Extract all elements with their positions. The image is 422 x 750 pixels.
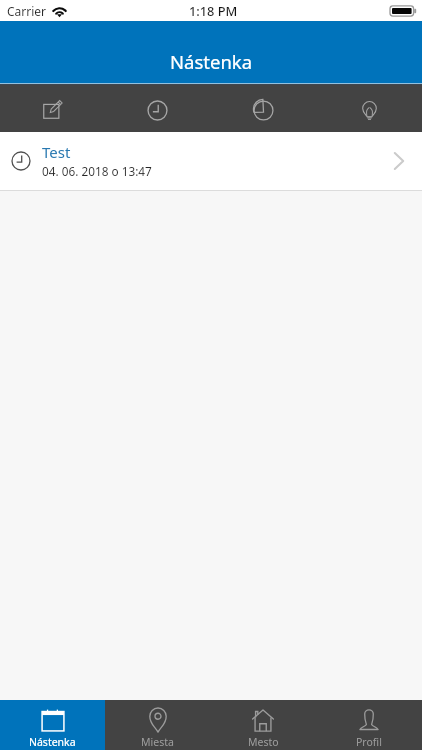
- staticText: Carrier: [7, 3, 47, 19]
- staticText: Nástenka: [170, 49, 253, 74]
- button[interactable]: Statistics: [210, 85, 316, 132]
- staticText: Miesta: [141, 735, 174, 749]
- button[interactable]: Test: [0, 132, 422, 190]
- button[interactable]: Recent: [105, 85, 210, 132]
- staticText: Nástenka: [29, 735, 76, 749]
- staticText: Test: [42, 142, 71, 162]
- button[interactable]: Miesta: [105, 700, 210, 750]
- staticText: Profil: [356, 735, 382, 749]
- button[interactable]: Ideas: [316, 85, 422, 132]
- button[interactable]: Compose: [0, 85, 105, 132]
- button[interactable]: Mesto: [210, 700, 316, 750]
- button[interactable]: Profil: [316, 700, 422, 750]
- staticText: Mesto: [248, 735, 279, 749]
- staticText: 1:18 PM: [189, 2, 238, 19]
- staticText: 04. 06. 2018 o 13:47: [42, 163, 152, 179]
- button[interactable]: Nástenka: [0, 700, 105, 750]
